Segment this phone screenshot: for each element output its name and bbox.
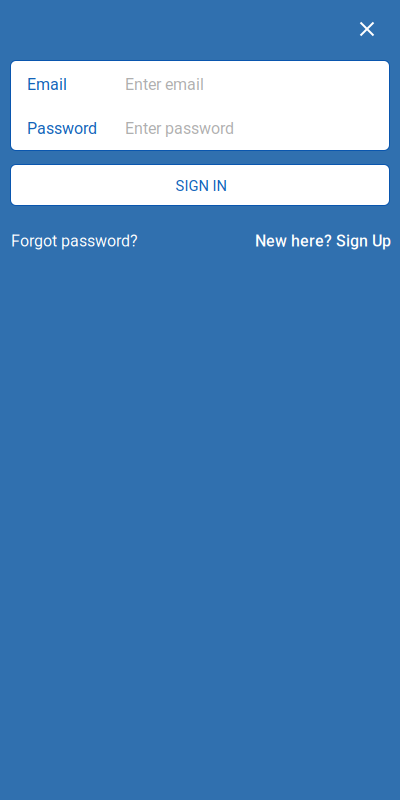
staticText: Email xyxy=(27,75,67,94)
button[interactable]: Password xyxy=(11,105,389,149)
staticText: Enter password xyxy=(125,119,234,138)
button[interactable]: Forgot password? xyxy=(11,232,138,250)
button[interactable]: New here? Sign Up xyxy=(255,232,391,250)
button[interactable]: SIGN IN xyxy=(11,165,389,205)
button[interactable]: Email xyxy=(11,61,389,105)
staticText: SIGN IN xyxy=(175,177,226,195)
staticText: Password xyxy=(27,119,97,138)
staticText: New here? Sign Up xyxy=(255,232,391,250)
button[interactable]: Close xyxy=(350,12,384,46)
staticText: Enter email xyxy=(125,75,204,94)
staticText: Forgot password? xyxy=(11,232,138,250)
